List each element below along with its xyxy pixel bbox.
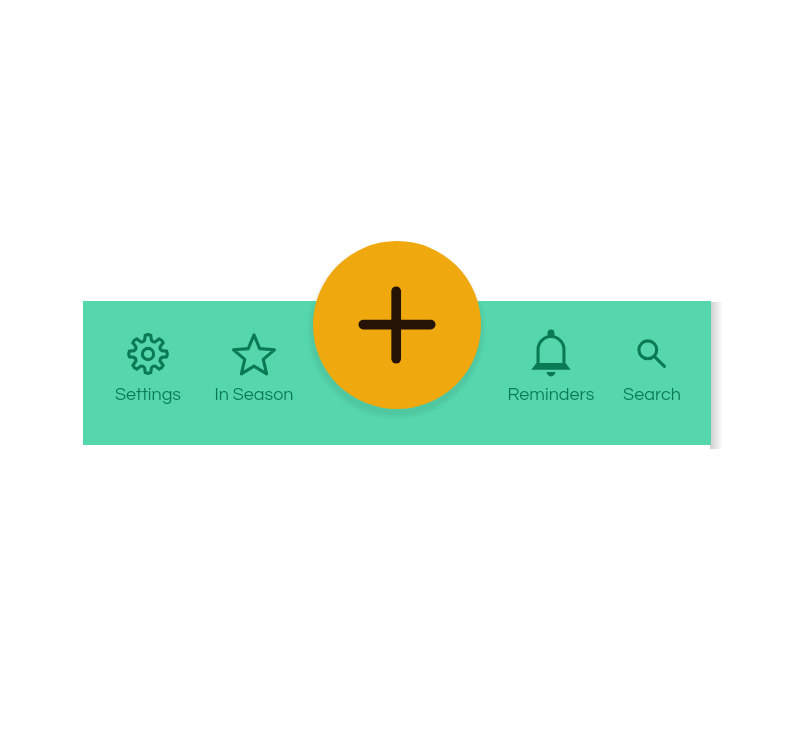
button[interactable]: Add new item bbox=[313, 241, 481, 409]
button[interactable]: Reminders bbox=[486, 301, 616, 445]
staticText: Settings bbox=[83, 385, 213, 404]
staticText: In Season bbox=[189, 385, 319, 404]
staticText: Reminders bbox=[486, 385, 616, 404]
button[interactable]: Search bbox=[587, 301, 717, 445]
button[interactable]: Settings bbox=[83, 301, 213, 445]
button[interactable]: In Season bbox=[189, 301, 319, 445]
staticText: Search bbox=[587, 385, 717, 404]
